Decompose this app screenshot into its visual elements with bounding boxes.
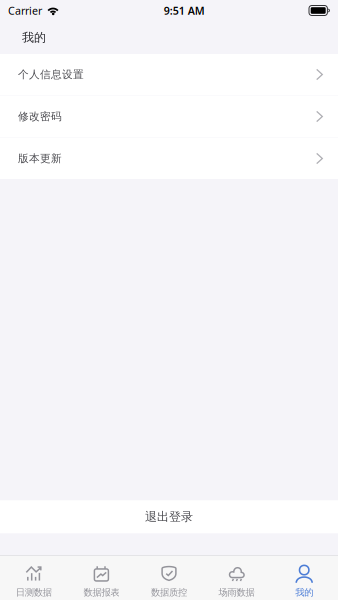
staticText: 我的 <box>22 30 46 45</box>
button[interactable]: 个人信息设置 <box>0 54 338 95</box>
button[interactable]: 修改密码 <box>0 96 338 137</box>
staticText: 退出登录 <box>145 509 193 524</box>
staticText: 场雨数据 <box>219 587 255 598</box>
staticText: Carrier <box>8 3 42 18</box>
button[interactable]: 日测数据 <box>0 556 68 600</box>
button[interactable]: 场雨数据 <box>203 556 270 600</box>
staticText: 版本更新 <box>18 152 62 165</box>
staticText: 我的 <box>295 587 313 598</box>
staticText: 数据报表 <box>83 587 119 598</box>
button[interactable]: 版本更新 <box>0 138 338 179</box>
button[interactable]: 数据质控 <box>135 556 203 600</box>
staticText: 9:51 AM <box>164 3 205 18</box>
button[interactable]: 退出登录 <box>0 500 338 533</box>
staticText: 数据质控 <box>151 587 187 598</box>
staticText: 修改密码 <box>18 110 62 123</box>
button[interactable]: 我的 <box>270 556 338 600</box>
button[interactable]: 数据报表 <box>68 556 135 600</box>
staticText: 日测数据 <box>16 587 52 598</box>
staticText: 个人信息设置 <box>18 68 84 81</box>
